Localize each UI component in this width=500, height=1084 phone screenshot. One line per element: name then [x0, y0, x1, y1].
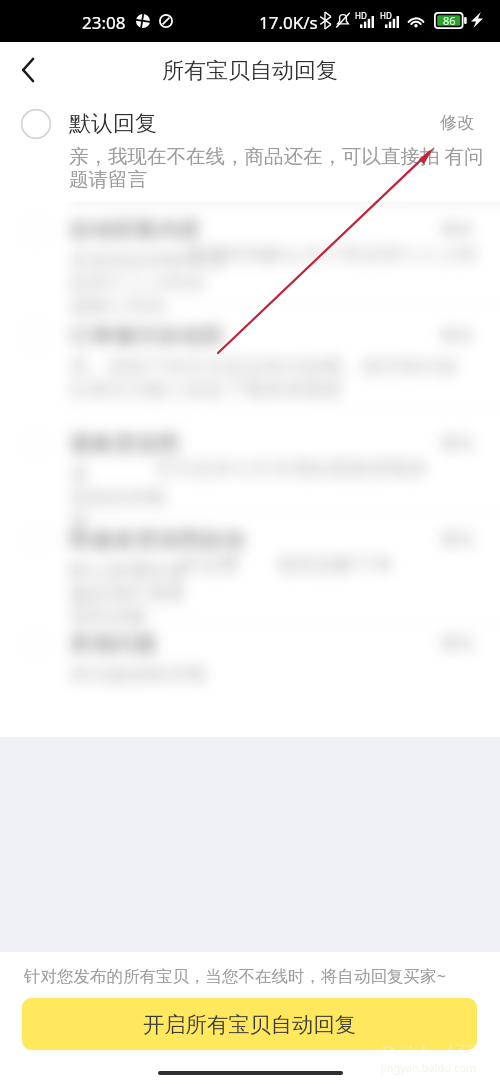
staticText: 快递发货说明自动 — [69, 526, 245, 554]
staticText: 亲，我现在不在线，商品还在，可以直接拍 有问题请留言 — [69, 142, 500, 192]
button[interactable]: 退换货说明 — [0, 430, 500, 533]
staticText: 开启所有宝贝自动回复 — [143, 1011, 356, 1038]
staticText: 修改 — [440, 632, 474, 653]
staticText: 17.0K/s — [259, 11, 318, 34]
staticText: 默认圆通快递 偏远地区需要 请您谅解 — [69, 558, 186, 629]
staticText: 亲 亲您好的呢 亲 — [69, 462, 167, 533]
button[interactable]: 其他问题 — [0, 630, 500, 687]
staticText: 修改 — [440, 112, 474, 133]
staticText: 其他问题 — [69, 630, 157, 658]
staticText: 所有宝贝自动回复 — [162, 57, 338, 85]
staticText: 默认回复 — [69, 110, 157, 138]
staticText: HD — [380, 10, 392, 21]
staticText: 发货时间默认为下单后四十八小时 — [186, 242, 479, 267]
button[interactable]: 默认回复 — [0, 97, 500, 202]
staticText: Baidu 经验 — [381, 1038, 491, 1068]
staticText: HD — [355, 10, 367, 21]
staticText: 修改 — [440, 218, 474, 239]
staticText: 修改 — [440, 432, 474, 453]
staticText: jingyan.baidu.com — [381, 1060, 477, 1075]
staticText: 宝贝支持七天无理由退换货哦亲 — [154, 456, 427, 481]
staticText: 自动回复内容 — [69, 216, 201, 244]
staticText: 退换货说明 — [69, 430, 179, 458]
staticText: 订单催付自动回 — [69, 322, 223, 350]
staticText: 请您谅解下单 — [276, 552, 393, 577]
button[interactable]: 订单催付自动回 — [0, 322, 500, 402]
button[interactable]: 开启所有宝贝自动回复 — [22, 998, 477, 1050]
staticText: 修改 — [440, 324, 474, 345]
staticText: 86 — [443, 13, 456, 28]
button[interactable]: 快递发货说明自动 — [0, 526, 500, 629]
staticText: 有问题请留言哦 — [69, 662, 206, 687]
staticText: 补运费 — [181, 552, 240, 577]
staticText: 针对您发布的所有宝贝，当您不在线时，将自动回复买家~ — [24, 964, 446, 987]
button[interactable]: 自动回复内容 — [0, 216, 500, 319]
staticText: 亲亲您好的呢宝贝 的四十八小时内 请耐心等待 — [69, 248, 225, 319]
staticText: 23:08 — [82, 11, 126, 34]
staticText: 修改 — [440, 528, 474, 549]
button[interactable]: Back — [0, 43, 54, 97]
staticText: 亲，您拍下的宝贝还没有付款哦，请尽快付款 以免宝贝被人拍走了哦亲亲谢谢 — [69, 354, 459, 402]
